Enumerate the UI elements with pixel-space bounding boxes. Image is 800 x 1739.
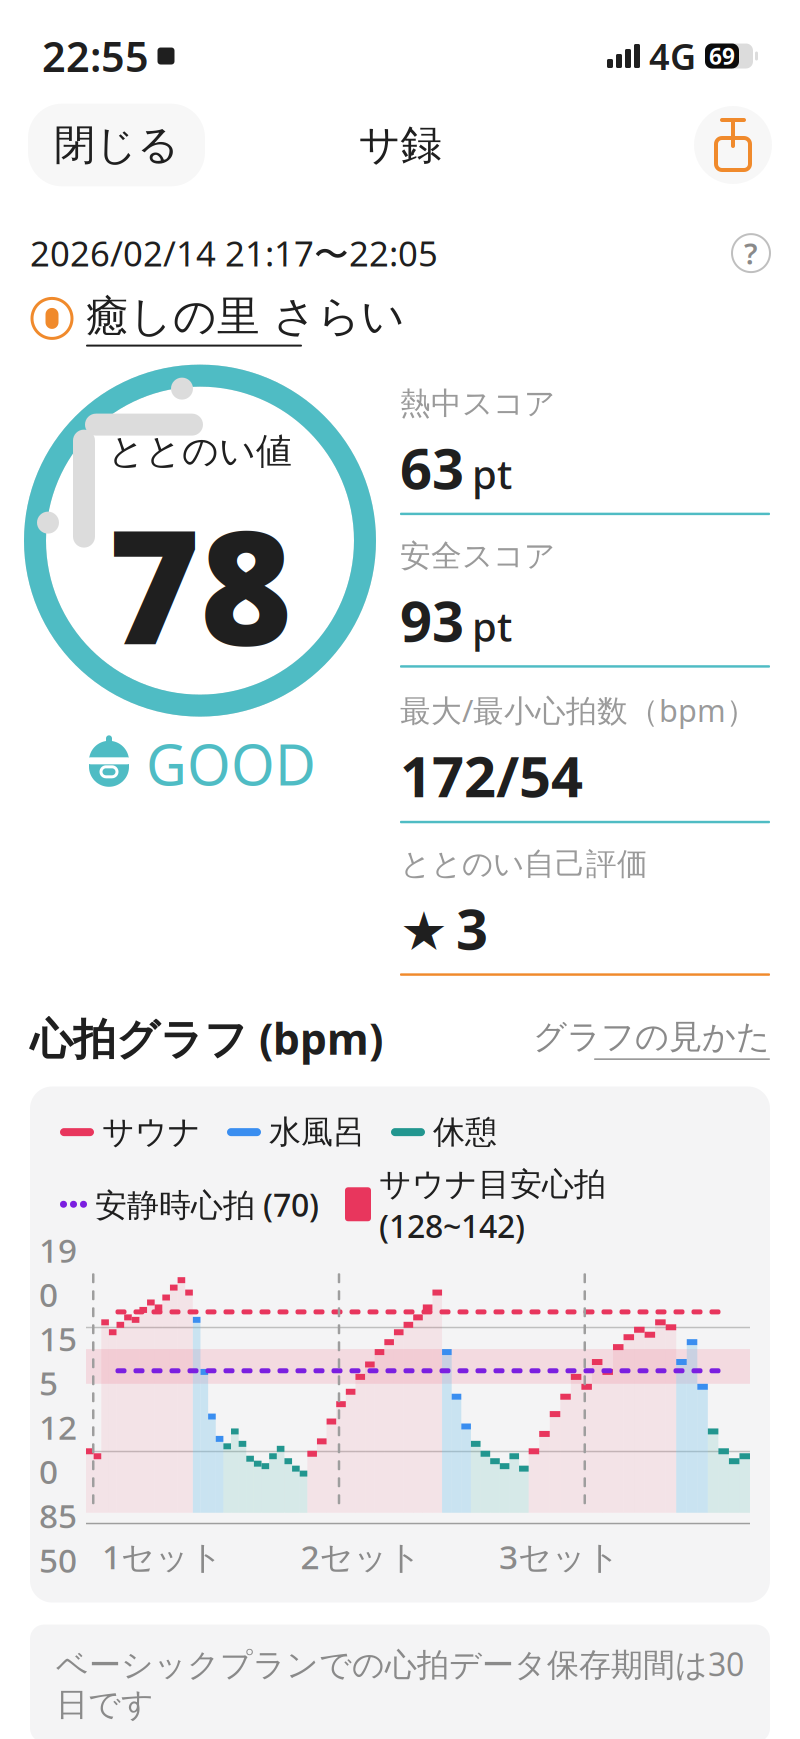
button[interactable]: ヘルプ — [732, 234, 770, 272]
staticText: 2026/02/14 21:17〜22:05 — [30, 230, 438, 276]
staticText: 癒しの里 さらい — [86, 290, 405, 343]
staticText: 69 — [709, 41, 735, 71]
staticText: 休憩 — [433, 1112, 497, 1152]
button[interactable]: グラフの見かた — [533, 1016, 770, 1060]
staticText: サウナ — [102, 1112, 201, 1152]
staticText: ととのい自己評価 — [400, 845, 648, 883]
staticText: 安全スコア — [400, 537, 555, 575]
staticText: 190 — [39, 1228, 77, 1316]
staticText: 最大/最小心拍数（bpm） — [400, 690, 757, 730]
staticText: 3 — [456, 891, 488, 965]
staticText: 93 — [400, 583, 464, 657]
button[interactable]: 癒しの里 さらい — [30, 290, 405, 347]
staticText: 4G — [649, 32, 696, 80]
staticText: グラフの見かた — [533, 1016, 770, 1057]
staticText: pt — [472, 447, 512, 500]
staticText: ととのい値 — [108, 429, 292, 473]
staticText: 3セット — [499, 1534, 620, 1579]
staticText: 閉じる — [54, 120, 179, 170]
staticText: サウナ目安心拍 (128~142) — [379, 1162, 606, 1247]
staticText: 63 — [400, 430, 464, 505]
staticText: ベーシックプランでの心拍データ保存期間は30日です — [56, 1642, 744, 1724]
staticText: GOOD — [146, 727, 316, 801]
staticText: 1セット — [102, 1534, 223, 1579]
staticText: 安静時心拍 (70) — [95, 1183, 319, 1225]
staticText: 50 — [39, 1538, 77, 1582]
button[interactable]: 閉じる — [28, 104, 205, 186]
staticText: pt — [472, 600, 512, 653]
staticText: ? — [744, 234, 758, 273]
staticText: サ録 — [358, 120, 441, 170]
staticText: ★ — [400, 901, 448, 962]
staticText: 155 — [39, 1316, 77, 1405]
staticText: 120 — [39, 1405, 77, 1493]
staticText: 熱中スコア — [400, 385, 555, 422]
button[interactable]: 共有 — [694, 106, 772, 184]
staticText: 22:55 — [42, 29, 149, 83]
staticText: 78 — [108, 479, 292, 688]
staticText: 心拍グラフ (bpm) — [30, 1010, 383, 1066]
staticText: 85 — [39, 1493, 77, 1538]
staticText: 2セット — [300, 1534, 421, 1579]
staticText: 172/54 — [400, 738, 583, 813]
staticText: 水風呂 — [269, 1112, 365, 1152]
